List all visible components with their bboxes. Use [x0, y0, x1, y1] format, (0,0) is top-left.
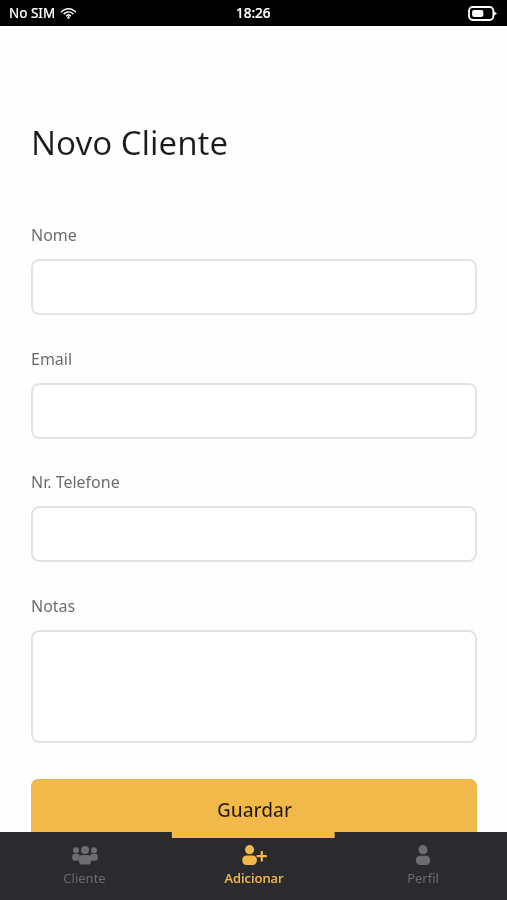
button[interactable]: [31, 506, 477, 562]
staticText: Guardar: [217, 797, 292, 823]
staticText: Nr. Telefone: [31, 471, 120, 493]
staticText: Notas: [31, 595, 76, 617]
staticText: No SIM: [9, 4, 56, 22]
button[interactable]: Adicionar cliente: [169, 832, 338, 900]
button[interactable]: Clientes: [0, 832, 169, 900]
staticText: Nome: [31, 224, 77, 246]
button[interactable]: [31, 383, 477, 439]
staticText: Adicionar: [224, 869, 284, 887]
staticText: Perfil: [407, 869, 439, 887]
staticText: Cliente: [63, 869, 106, 887]
other: Adicionar cliente: [241, 844, 267, 865]
button[interactable]: Guardar: [31, 779, 477, 839]
staticText: Novo Cliente: [31, 120, 229, 165]
other: Clientes: [72, 844, 98, 865]
staticText: Email: [31, 348, 73, 370]
button[interactable]: [31, 259, 477, 315]
button[interactable]: [31, 630, 477, 743]
button[interactable]: Perfil: [338, 832, 507, 900]
staticText: 18:26: [236, 4, 271, 22]
other: Perfil: [410, 844, 436, 865]
